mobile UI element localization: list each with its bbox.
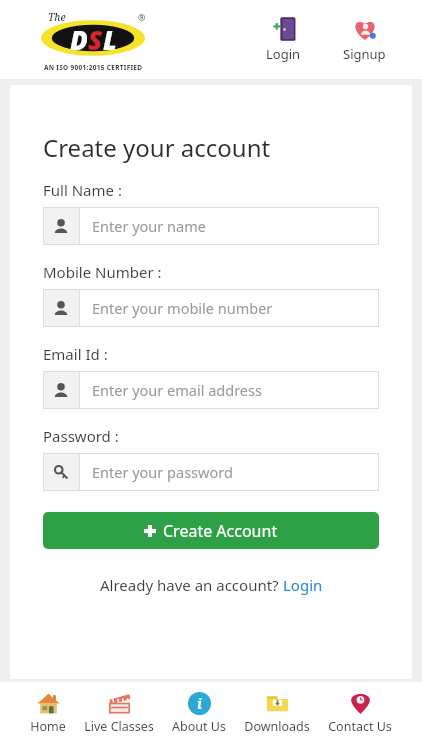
staticText: ®: [138, 11, 146, 23]
button[interactable]: Signup: [339, 14, 390, 65]
button[interactable]: Enter your name: [43, 207, 379, 245]
button[interactable]: i: [170, 689, 228, 738]
button[interactable]: Downloads: [242, 689, 312, 738]
staticText: S: [88, 22, 103, 57]
staticText: Enter your name: [92, 216, 206, 236]
staticText: Signup: [343, 45, 386, 63]
other: Login: [271, 16, 297, 42]
staticText: L: [103, 22, 117, 57]
staticText: Home: [30, 718, 66, 735]
staticText: Enter your mobile number: [92, 298, 273, 318]
button[interactable]: Login: [262, 14, 305, 65]
staticText: Downloads: [244, 718, 310, 735]
staticText: Create Account: [163, 520, 278, 542]
button[interactable]: Enter your mobile number: [43, 289, 379, 327]
other: Signup: [352, 16, 378, 42]
staticText: Password :: [43, 426, 119, 446]
staticText: Login: [283, 575, 323, 595]
button[interactable]: Create Account: [43, 512, 379, 549]
staticText: Contact Us: [328, 718, 392, 735]
button[interactable]: Enter your password: [43, 453, 379, 491]
staticText: i: [197, 694, 202, 713]
button[interactable]: Login: [283, 575, 323, 595]
staticText: Mobile Number :: [43, 262, 162, 282]
staticText: AN ISO 9001:2015 CERTIFIED: [44, 63, 143, 72]
staticText: About Us: [172, 718, 226, 735]
button[interactable]: Contact Us: [326, 689, 394, 738]
button[interactable]: Enter your email address: [43, 371, 379, 409]
staticText: Full Name :: [43, 180, 122, 200]
button[interactable]: Home: [28, 689, 68, 738]
staticText: Live Classes: [84, 718, 154, 735]
staticText: Email Id :: [43, 344, 108, 364]
staticText: Login: [266, 45, 301, 63]
staticText: The: [48, 10, 66, 24]
staticText: D: [70, 22, 88, 57]
staticText: Create your account: [43, 131, 271, 164]
staticText: Enter your email address: [92, 380, 262, 400]
staticText: Enter your password: [92, 462, 233, 482]
staticText: Already have an account?: [100, 575, 283, 595]
button[interactable]: Live Classes: [82, 689, 156, 738]
